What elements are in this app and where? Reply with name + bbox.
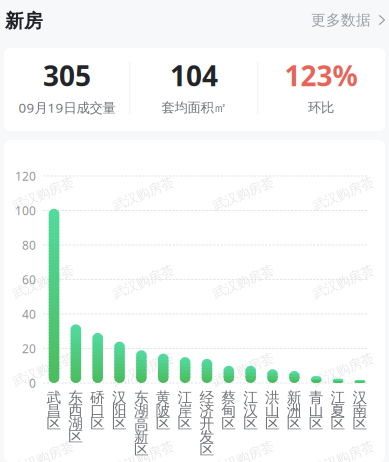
staticText: 区 [331,414,346,432]
staticText: 东 [134,388,149,406]
staticText: 区 [309,414,324,432]
staticText: 120 [15,168,36,184]
staticText: 洪 [265,388,280,406]
staticText: 江 [178,388,193,406]
staticText: 60 [22,271,36,287]
staticText: 汉 [352,388,367,406]
staticText: 区 [221,414,236,432]
staticText: 104 [170,57,218,94]
staticText: 区 [90,414,105,432]
staticText: 123% [284,57,357,94]
staticText: 武汉购房荟 [210,186,275,202]
staticText: 武 [46,388,61,406]
staticText: 硚 [90,388,105,406]
button[interactable]: 更多数据 [305,5,389,35]
staticText: 湖 [134,401,149,419]
staticText: 济 [199,401,214,419]
staticText: 武汉购房荟 [310,450,375,462]
staticText: 区 [68,427,83,445]
staticText: 口 [90,401,105,419]
staticText: 套均面积㎡ [161,99,226,116]
staticText: 新 [134,427,149,445]
staticText: 武汉购房荟 [10,450,75,462]
staticText: 新 [287,388,302,406]
staticText: 发 [199,427,214,445]
staticText: 武汉购房荟 [110,274,175,290]
staticText: 陂 [156,401,171,419]
staticText: 江 [243,388,258,406]
staticText: 武汉购房荟 [210,362,275,378]
staticText: 0 [29,375,36,391]
staticText: 蔡 [221,388,236,406]
staticText: 甸 [221,401,236,419]
staticText: 江 [331,388,346,406]
staticText: 区 [156,414,171,432]
staticText: 武汉购房荟 [10,362,75,378]
staticText: 区 [199,440,214,458]
staticText: 洲 [287,401,302,419]
staticText: 湖 [68,414,83,432]
staticText: 武汉购房荟 [310,274,375,290]
staticText: 昌 [46,401,61,419]
staticText: 305 [43,57,91,94]
staticText: 岸 [178,401,193,419]
staticText: 武汉购房荟 [10,274,75,290]
staticText: 区 [352,414,367,432]
staticText: 经 [199,388,214,406]
staticText: 山 [309,401,324,419]
staticText: 武汉购房荟 [210,274,275,290]
staticText: 区 [134,440,149,458]
staticText: 青 [309,388,324,406]
staticText: 汉 [112,388,127,406]
staticText: 区 [265,414,280,432]
staticText: 更多数据 [311,11,371,29]
staticText: 东 [68,388,83,406]
staticText: 环比 [308,99,334,116]
staticText: 夏 [331,401,346,419]
staticText: 黄 [156,388,171,406]
staticText: 区 [178,414,193,432]
staticText: 区 [243,414,258,432]
staticText: 武汉购房荟 [110,362,175,378]
staticText: 区 [46,414,61,432]
staticText: 20 [22,340,36,356]
staticText: 武汉购房荟 [210,450,275,462]
staticText: 西 [68,401,83,419]
staticText: 80 [22,237,36,253]
staticText: 武汉购房荟 [310,362,375,378]
staticText: 武汉购房荟 [310,186,375,202]
staticText: 区 [287,414,302,432]
staticText: 40 [22,306,36,322]
staticText: 汉 [243,401,258,419]
staticText: 高 [134,414,149,432]
staticText: 开 [199,414,214,432]
staticText: 武汉购房荟 [10,186,75,202]
staticText: 武汉购房荟 [110,450,175,462]
staticText: 09月19日成交量 [18,99,115,116]
staticText: 山 [265,401,280,419]
staticText: 南 [352,401,367,419]
staticText: 区 [112,414,127,432]
staticText: 阳 [112,401,127,419]
staticText: 新房 [5,9,43,32]
staticText: 100 [15,202,36,218]
staticText: 武汉购房荟 [110,186,175,202]
